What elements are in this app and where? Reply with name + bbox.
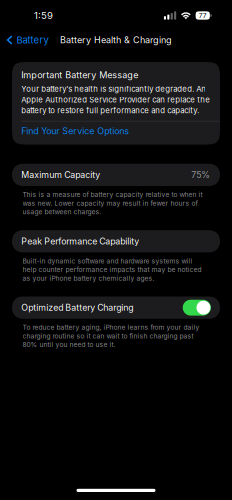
button[interactable]: Optimized Battery Charging — [183, 300, 211, 316]
staticText: Important Battery Message — [21, 69, 138, 80]
button[interactable]: Find Your Service Options — [12, 121, 220, 145]
staticText: Built-in dynamic software and hardware s… — [22, 257, 201, 282]
staticText: This is a measure of battery capacity re… — [22, 191, 202, 216]
staticText: To reduce battery aging, iPhone learns f… — [22, 323, 199, 349]
staticText: 77 — [199, 11, 207, 20]
button[interactable]: Battery — [0, 31, 54, 49]
staticText: 75% — [191, 169, 210, 180]
staticText: Battery Health & Charging — [60, 34, 172, 45]
staticText: Battery — [16, 34, 48, 46]
staticText: Optimized Battery Charging — [21, 302, 133, 313]
button[interactable]: Maximum Capacity — [12, 164, 220, 186]
staticText: Maximum Capacity — [21, 169, 100, 180]
staticText: Find Your Service Options — [21, 126, 129, 136]
staticText: 1:59 — [34, 10, 53, 21]
staticText: Peak Performance Capability — [21, 236, 139, 246]
button[interactable]: Peak Performance Capability — [12, 230, 220, 252]
staticText: Your battery's health is significantly d… — [21, 84, 210, 115]
